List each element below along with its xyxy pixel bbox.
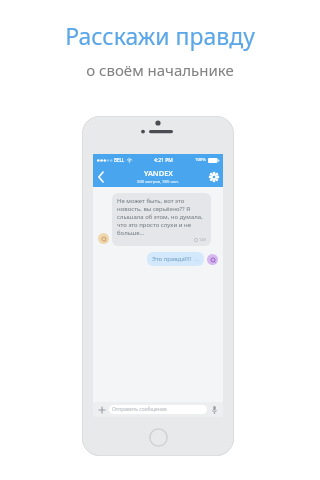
button[interactable]: Voice message <box>209 405 219 415</box>
button[interactable]: Не может быть, вот это новость, вы серьё… <box>112 193 211 246</box>
button[interactable]: Это правда!!!! <box>147 252 204 266</box>
staticText: BELL <box>114 157 125 163</box>
button[interactable]: Home <box>149 428 168 447</box>
staticText: 148 <box>199 237 206 242</box>
staticText: Не может быть, вот это новость, вы серьё… <box>117 197 206 237</box>
staticText: о своём начальнике <box>86 60 234 80</box>
button[interactable]: Back <box>93 166 109 187</box>
staticText: Это правда!!!! <box>152 255 192 263</box>
staticText: … <box>195 256 199 263</box>
staticText: 100% <box>195 157 206 163</box>
button[interactable]: Отправить сообщение <box>109 405 207 414</box>
staticText: Расскажи правду <box>65 20 255 51</box>
button[interactable]: Attach <box>97 405 107 415</box>
staticText: 4:21 PM <box>154 157 173 164</box>
button[interactable]: Avatar <box>207 254 218 265</box>
staticText: 500 метров, 365 чел. <box>137 179 179 185</box>
button[interactable]: Avatar <box>98 233 109 244</box>
button[interactable]: Settings <box>205 166 223 187</box>
staticText: YANDEX <box>144 168 173 178</box>
staticText: Отправить сообщение <box>112 406 167 413</box>
